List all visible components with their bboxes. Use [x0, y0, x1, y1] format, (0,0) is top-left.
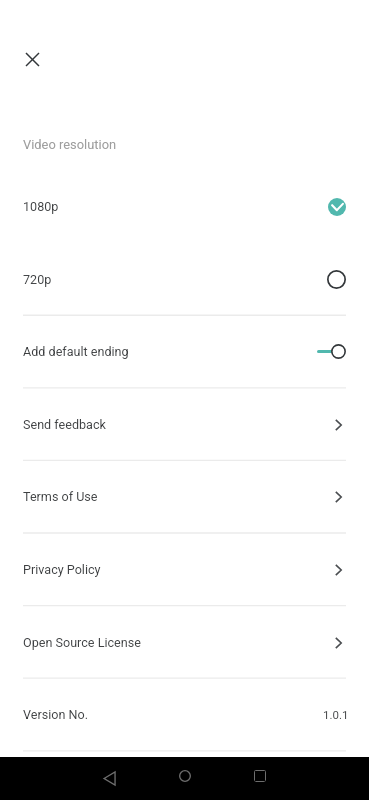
button[interactable]: Privacy Policy [0, 533, 369, 606]
staticText: Video resolution [23, 137, 117, 152]
staticText: 720p [23, 272, 327, 287]
button[interactable]: Select 720p [327, 270, 346, 289]
staticText: Add default ending [23, 344, 317, 359]
staticText: Privacy Policy [23, 562, 335, 577]
button[interactable]: Send feedback [0, 388, 369, 461]
staticText: Terms of Use [23, 489, 335, 504]
button[interactable]: Back [91, 760, 127, 796]
button[interactable]: Version No. [0, 678, 369, 751]
button[interactable]: Recents [242, 758, 278, 794]
staticText: Open Source License [23, 635, 335, 650]
button[interactable]: Open Source License [0, 606, 369, 679]
button[interactable]: 1080p [0, 170, 369, 243]
staticText: 1080p [23, 199, 328, 214]
button[interactable]: Add default ending toggle, on [317, 344, 346, 359]
button[interactable]: Terms of Use [0, 460, 369, 533]
button[interactable]: Home [167, 758, 203, 794]
staticText: Send feedback [23, 417, 335, 432]
button[interactable]: Close [12, 39, 52, 79]
staticText: Version No. [23, 707, 320, 722]
staticText: 1.0.1 [323, 708, 349, 721]
button[interactable]: Add default ending [0, 315, 369, 388]
button[interactable]: 720p [0, 243, 369, 316]
button[interactable]: 1080p selected [328, 198, 346, 216]
